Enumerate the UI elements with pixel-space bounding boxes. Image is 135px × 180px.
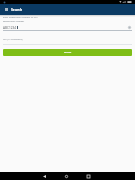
- button[interactable]: Back: [40, 172, 49, 180]
- staticText: VIN (17 characters): [3, 38, 23, 41]
- button[interactable]: Recent apps: [84, 172, 93, 180]
- staticText: Search: [11, 7, 23, 12]
- button[interactable]: Home: [62, 172, 71, 180]
- button[interactable]: Navigate up: [3, 4, 10, 15]
- staticText: ABC1234: [3, 26, 17, 30]
- staticText: SEARCH: [64, 51, 72, 54]
- staticText: Enter Registration number or VIN: [3, 16, 38, 19]
- button[interactable]: SEARCH: [3, 49, 132, 56]
- button[interactable]: Scan registration: [127, 25, 132, 30]
- staticText: Registration number: [3, 20, 25, 23]
